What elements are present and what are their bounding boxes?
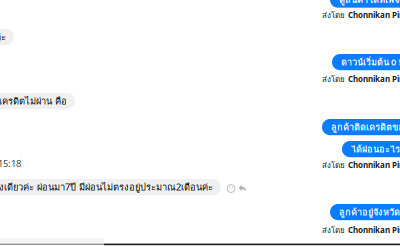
- staticText: ผ่อนบ้านอย่างเดียวค่ะ ผ่อนมา7ปี มีผ่อนไม…: [0, 180, 213, 194]
- staticText: ส่งโดย Chonnikan Pimkhamsi: [322, 224, 400, 236]
- button[interactable]: Reply: [238, 184, 246, 192]
- staticText: ส่งโดย Chonnikan Pimkhamsi: [322, 9, 400, 21]
- staticText: ลูกค้าอยู่จังหวัดอะไรคะ: [339, 205, 400, 219]
- staticText: ดูสินค้าได้ที่เพจเลยค่ะ: [339, 0, 400, 7]
- staticText: รับทราบแล้วค่ะ: [0, 30, 6, 44]
- button[interactable]: ผ่อนบ้านอย่างเดียวค่ะ ผ่อนมา7ปี มีผ่อนไม…: [0, 179, 221, 195]
- staticText: 15:18: [0, 157, 21, 170]
- button[interactable]: ลูกค้าอยู่จังหวัดอะไรคะ: [330, 204, 400, 220]
- staticText: ลูกค้าติดเครดิตของอะไรคะ: [331, 120, 400, 134]
- button[interactable]: ดูสินค้าได้ที่เพจเลยค่ะ: [330, 0, 400, 8]
- button[interactable]: ได้ผ่อนอะไรไหมคะ: [342, 141, 400, 157]
- staticText: ช่วงที่ผ่านมาเช็คประวัติเครดิตไม่ผ่าน คื…: [0, 94, 67, 108]
- staticText: ส่งโดย Chonnikan Pimkhamsi: [322, 159, 400, 171]
- staticText: ดาวน์เริ่มต้น 0 บาท ผ่อนได้: [341, 55, 400, 69]
- button[interactable]: ช่วงที่ผ่านมาเช็คประวัติเครดิตไม่ผ่าน คื…: [0, 93, 75, 109]
- button[interactable]: ดาวน์เริ่มต้น 0 บาท ผ่อนได้: [332, 54, 400, 70]
- staticText: ส่งโดย Chonnikan Pimkhamsi: [322, 73, 400, 85]
- button[interactable]: ลูกค้าติดเครดิตของอะไรคะ: [322, 119, 400, 135]
- staticText: ได้ผ่อนอะไรไหมคะ: [351, 142, 400, 156]
- button[interactable]: รับทราบแล้วค่ะ: [0, 29, 14, 45]
- button[interactable]: React: [226, 184, 235, 193]
